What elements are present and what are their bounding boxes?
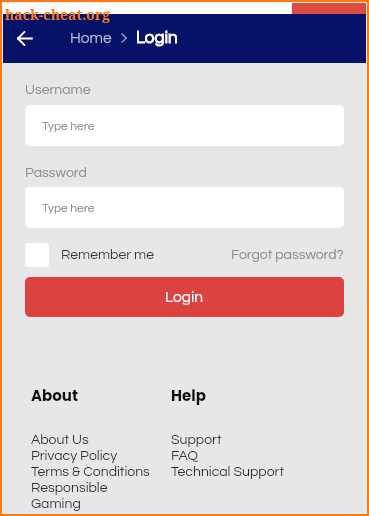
button[interactable]: Privacy Policy <box>31 449 171 465</box>
button[interactable]: Login <box>25 277 344 317</box>
staticText: hack-cheat.org <box>5 5 111 24</box>
staticText: About Us <box>31 433 89 447</box>
staticText: Password <box>25 166 87 180</box>
staticText: Technical Support <box>171 465 284 479</box>
staticText: FAQ <box>171 449 198 463</box>
button[interactable]: Type here <box>25 187 344 228</box>
button[interactable]: Terms & Conditions <box>31 465 171 481</box>
staticText: Type here <box>42 202 95 214</box>
staticText: Remember me <box>61 248 154 262</box>
button[interactable]: FAQ <box>171 449 366 465</box>
button[interactable]: Support <box>171 433 366 449</box>
staticText: About <box>31 385 78 406</box>
button[interactable]: Gaming <box>31 497 171 513</box>
staticText: Gaming <box>31 497 81 511</box>
staticText: Responsible <box>31 481 108 495</box>
staticText: Privacy Policy <box>31 449 118 463</box>
button[interactable]: Technical Support <box>171 465 366 481</box>
button[interactable]: Responsible <box>31 481 171 497</box>
button[interactable]: Type here <box>25 105 344 146</box>
button[interactable]: About Us <box>31 433 171 449</box>
staticText: Support <box>171 433 222 447</box>
staticText: Login <box>136 29 178 47</box>
staticText: Login <box>165 289 204 305</box>
staticText: Username <box>25 83 91 97</box>
staticText: Help <box>171 385 206 406</box>
button[interactable]: Back <box>7 21 41 55</box>
staticText: Terms & Conditions <box>31 465 150 479</box>
button[interactable]: Forgot password? <box>231 248 344 262</box>
button[interactable]: Remember me <box>25 243 154 267</box>
staticText: Type here <box>42 120 95 132</box>
button[interactable]: Home <box>70 30 112 46</box>
